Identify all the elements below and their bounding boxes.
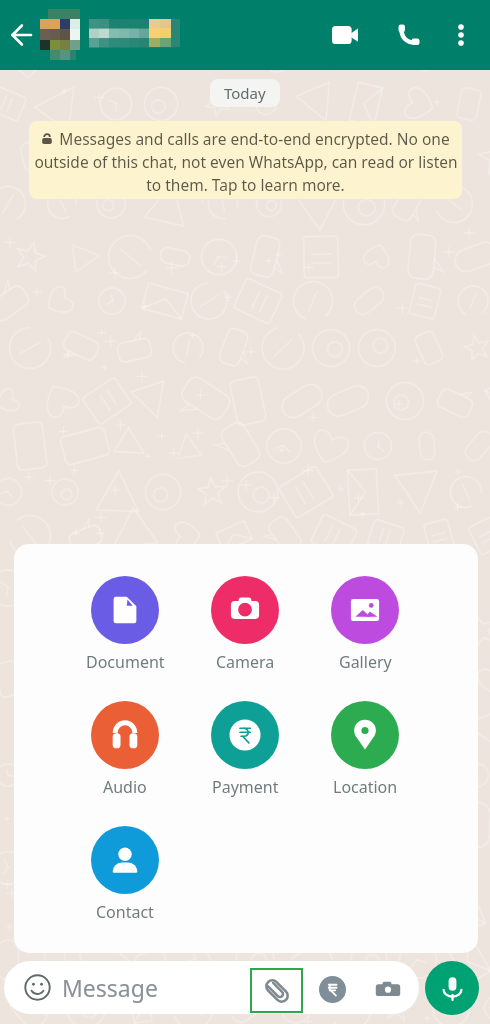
button[interactable]: Emoji bbox=[20, 970, 55, 1005]
staticText: Payment bbox=[212, 776, 279, 797]
button[interactable]: Location bbox=[314, 701, 416, 797]
staticText: Document bbox=[86, 651, 165, 672]
staticText: Gallery bbox=[339, 651, 392, 672]
button[interactable]: Record voice message bbox=[425, 961, 479, 1015]
staticText: Camera bbox=[216, 651, 275, 672]
staticText: Today bbox=[224, 83, 266, 103]
button[interactable]: Payment bbox=[319, 976, 346, 1003]
button[interactable]: Camera bbox=[194, 576, 296, 672]
button[interactable]: Video call bbox=[321, 11, 369, 59]
button[interactable]: Camera bbox=[373, 975, 402, 1004]
button[interactable]: Messages and calls are end-to-end encryp… bbox=[29, 121, 462, 199]
button[interactable]: Contact bbox=[74, 826, 176, 922]
button[interactable]: Voice call bbox=[384, 11, 432, 59]
button[interactable]: Attach bbox=[250, 968, 303, 1013]
button[interactable]: Payment bbox=[194, 701, 296, 797]
button[interactable]: Gallery bbox=[314, 576, 416, 672]
button[interactable]: Document bbox=[74, 576, 176, 672]
staticText: Location bbox=[333, 776, 398, 797]
button[interactable]: More options bbox=[437, 11, 485, 59]
button[interactable]: Back bbox=[0, 0, 42, 70]
staticText: Contact bbox=[96, 901, 154, 922]
staticText: Audio bbox=[103, 776, 147, 797]
button[interactable]: Audio bbox=[74, 701, 176, 797]
staticText: Messages and calls are end-to-end encryp… bbox=[59, 128, 450, 149]
staticText: to them. Tap to learn more. bbox=[146, 174, 345, 195]
staticText: outside of this chat, not even WhatsApp,… bbox=[34, 151, 458, 172]
staticText: Message bbox=[62, 972, 158, 1003]
